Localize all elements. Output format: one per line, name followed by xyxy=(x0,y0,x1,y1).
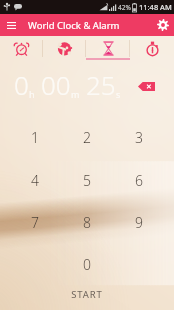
button[interactable]: 5 xyxy=(61,159,113,201)
button[interactable]: 3 xyxy=(113,116,165,159)
staticText: 25 xyxy=(86,67,116,102)
staticText: 1 xyxy=(31,128,39,147)
staticText: 11:48 AM xyxy=(139,2,172,12)
staticText: 4 xyxy=(31,171,39,190)
button[interactable]: 9 xyxy=(113,201,165,243)
staticText: 7 xyxy=(31,213,39,232)
button[interactable]: 7 xyxy=(9,201,61,243)
button[interactable]: Settings xyxy=(152,14,174,36)
staticText: 42% xyxy=(118,3,131,12)
button[interactable]: 0 xyxy=(61,243,113,285)
staticText: World Clock & Alarm xyxy=(28,19,120,32)
staticText: 0 xyxy=(83,255,91,274)
staticText: START xyxy=(71,288,103,301)
staticText: 0 xyxy=(14,67,29,102)
staticText: 6 xyxy=(135,171,143,190)
staticText: 3 xyxy=(135,128,143,147)
staticText: 00 xyxy=(41,67,71,102)
staticText: 2 xyxy=(83,128,91,147)
button[interactable]: 2 xyxy=(61,116,113,159)
button[interactable]: Backspace xyxy=(138,82,155,91)
button[interactable]: Stopwatch xyxy=(130,36,174,60)
button[interactable]: Alarm xyxy=(0,36,43,60)
staticText: 9 xyxy=(135,213,143,232)
button[interactable]: 1 xyxy=(9,116,61,159)
button[interactable]: World clock xyxy=(43,36,86,60)
staticText: 8 xyxy=(83,213,91,232)
button[interactable]: Timer xyxy=(86,36,130,60)
button[interactable]: Menu xyxy=(0,14,22,36)
button[interactable]: 8 xyxy=(61,201,113,243)
staticText: m xyxy=(71,88,80,100)
button[interactable]: 6 xyxy=(113,159,165,201)
staticText: h xyxy=(29,88,35,100)
staticText: 5 xyxy=(83,171,91,190)
button[interactable]: 4 xyxy=(9,159,61,201)
button[interactable]: START xyxy=(0,285,174,310)
staticText: s xyxy=(116,88,121,100)
